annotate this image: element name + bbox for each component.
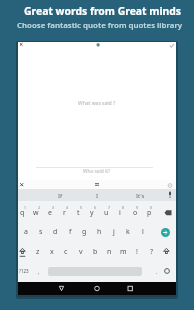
button[interactable] (167, 41, 176, 50)
button[interactable]: a (19, 226, 33, 238)
staticText: 6 (94, 205, 97, 210)
staticText: What was said ? (78, 100, 116, 107)
staticText: 8 (122, 205, 125, 210)
staticText: x (50, 247, 54, 257)
button[interactable]: g (77, 226, 91, 238)
button[interactable] (161, 228, 170, 237)
staticText: 2 (38, 205, 41, 210)
button[interactable]: x (45, 246, 59, 258)
staticText: q (20, 208, 25, 218)
staticText: k (126, 227, 130, 237)
button[interactable]: w (29, 207, 43, 219)
button[interactable]: , (35, 266, 43, 276)
staticText: y (90, 208, 94, 218)
staticText: s (39, 227, 43, 237)
staticText: If (58, 192, 63, 200)
staticText: r (63, 208, 66, 218)
staticText: t (77, 208, 80, 218)
button[interactable]: c (59, 246, 73, 258)
button[interactable]: e (43, 207, 57, 219)
staticText: Choose fantastic quote from quotes libra… (17, 20, 183, 31)
button[interactable] (18, 246, 29, 257)
button[interactable]: . (153, 266, 161, 276)
button[interactable]: d (48, 226, 62, 238)
staticText: 3 (52, 205, 55, 210)
staticText: v (79, 247, 83, 257)
button[interactable]: k (121, 226, 135, 238)
staticText: c (64, 247, 68, 257)
button[interactable] (18, 180, 27, 189)
button[interactable] (92, 180, 102, 189)
button[interactable] (90, 283, 105, 294)
button[interactable]: o (128, 207, 142, 219)
button[interactable]: n (102, 246, 116, 258)
staticText: 0 (150, 205, 153, 210)
staticText: ! (136, 247, 138, 257)
button[interactable]: It's (125, 190, 155, 201)
staticText: d (53, 227, 58, 237)
staticText: p (147, 208, 152, 218)
staticText: I (96, 192, 99, 200)
button[interactable]: h (92, 226, 106, 238)
button[interactable]: u (99, 207, 113, 219)
button[interactable]: I (82, 190, 112, 201)
staticText: 5 (80, 205, 83, 210)
staticText: g (82, 227, 87, 237)
staticText: o (133, 208, 138, 218)
button[interactable]: v (74, 246, 88, 258)
button[interactable] (165, 190, 175, 200)
staticText: n (107, 247, 112, 257)
staticText: 1 (24, 205, 27, 210)
button[interactable]: l (136, 226, 150, 238)
staticText: Who said it? (83, 168, 111, 175)
button[interactable]: i (113, 207, 127, 219)
button[interactable]: j (107, 226, 121, 238)
staticText: u (104, 208, 109, 218)
button[interactable]: m (116, 246, 130, 258)
staticText: 9 (136, 205, 139, 210)
button[interactable]: Who said it? (37, 166, 157, 176)
button[interactable]: If (45, 190, 75, 201)
button[interactable]: b (88, 246, 102, 258)
staticText: z (36, 247, 40, 257)
staticText: 4 (66, 205, 69, 210)
button[interactable] (162, 266, 172, 276)
button[interactable]: p (142, 207, 156, 219)
button[interactable] (161, 246, 172, 257)
button[interactable] (18, 41, 27, 50)
button[interactable]: t (71, 207, 85, 219)
button[interactable] (165, 180, 175, 189)
button[interactable] (162, 207, 174, 218)
staticText: ? (150, 247, 154, 257)
staticText: . (156, 268, 158, 275)
staticText: e (48, 208, 52, 218)
staticText: l (142, 227, 144, 237)
button[interactable]: s (34, 226, 48, 238)
staticText: , (38, 268, 40, 275)
button[interactable]: ! (130, 246, 144, 258)
staticText: j (113, 227, 115, 237)
staticText: b (93, 247, 98, 257)
button[interactable]: ?123 (15, 266, 33, 276)
staticText: m (120, 247, 127, 257)
staticText: It's (136, 192, 145, 200)
button[interactable]: What was said ? (37, 97, 157, 109)
button[interactable] (122, 283, 137, 294)
staticText: h (97, 227, 102, 237)
button[interactable]: q (15, 207, 29, 219)
button[interactable]: f (63, 226, 77, 238)
button[interactable]: y (85, 207, 99, 219)
staticText: Great words from Great minds (24, 4, 182, 18)
button[interactable] (93, 41, 102, 50)
staticText: ?123 (19, 268, 29, 274)
button[interactable] (54, 283, 69, 294)
staticText: f (69, 227, 72, 237)
button[interactable]: z (31, 246, 45, 258)
staticText: w (33, 208, 39, 218)
button[interactable]: ? (145, 246, 159, 258)
staticText: i (119, 208, 121, 218)
staticText: a (24, 227, 28, 237)
button[interactable]: r (57, 207, 71, 219)
staticText: 7 (108, 205, 111, 210)
